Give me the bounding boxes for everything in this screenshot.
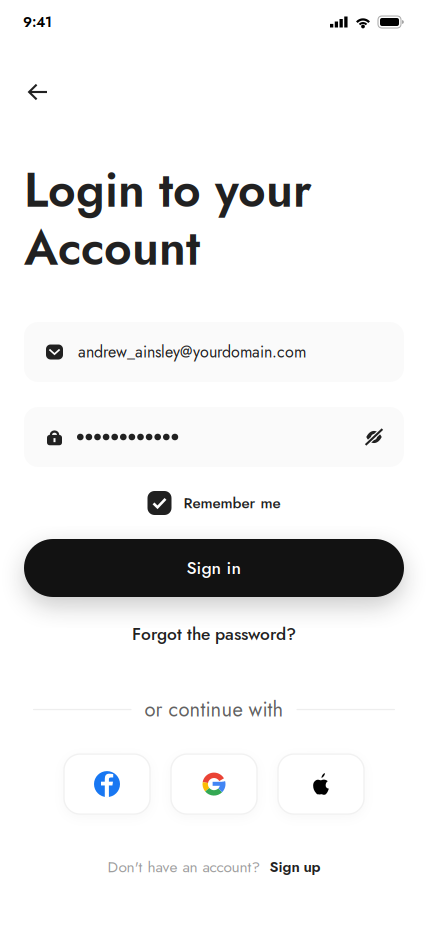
staticText: Login to your: [24, 155, 312, 225]
button[interactable]: Back: [15, 45, 61, 115]
staticText: Remember me: [183, 492, 280, 514]
button[interactable]: Sign in: [24, 539, 404, 597]
staticText: 9:41: [23, 12, 52, 32]
button[interactable]: Show password: [359, 422, 389, 452]
button[interactable]: Sign up: [269, 856, 320, 878]
staticText: Don't have an account?: [107, 856, 260, 878]
button[interactable]: Remember me: [147, 491, 280, 515]
staticText: Sign up: [269, 856, 320, 878]
staticText: Sign in: [186, 555, 241, 581]
button[interactable]: Continue with Google: [171, 754, 257, 814]
staticText: Forgot the password?: [132, 621, 296, 646]
button[interactable]: Continue with Apple: [278, 754, 364, 814]
button[interactable]: Continue with Facebook: [64, 754, 150, 814]
staticText: or continue with: [144, 695, 283, 724]
staticText: Account: [24, 213, 200, 283]
button[interactable]: Forgot the password?: [132, 625, 296, 643]
staticText: andrew_ainsley@yourdomain.com: [78, 340, 306, 363]
